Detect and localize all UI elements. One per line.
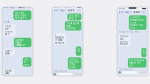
staticText: Read (4, 20, 11, 23)
button[interactable]: Send (24, 76, 32, 78)
staticText: See you (24, 58, 29, 66)
staticText: Yes (143, 49, 146, 56)
staticText: Edit (26, 6, 32, 9)
button[interactable]: Messages (118, 11, 132, 14)
staticText: Sam (133, 11, 139, 14)
button[interactable]: Edit (141, 11, 147, 14)
staticText: I missed it was at work (55, 34, 64, 44)
staticText: Yes! be there at 7 (5, 25, 13, 35)
button[interactable]: Send (139, 71, 147, 74)
staticText: I'll book a table for us (129, 59, 143, 67)
staticText: Did you see it (69, 14, 80, 20)
staticText: Can't wait (5, 50, 12, 55)
staticText: Read 9:42 AM (119, 30, 139, 33)
button[interactable]: Messages (53, 9, 67, 12)
staticText: Mom (18, 6, 24, 9)
staticText: 9:41 (119, 7, 125, 10)
staticText: Oof (77, 47, 80, 55)
button[interactable]: Add attachment (118, 71, 121, 74)
button[interactable]: Edit (26, 6, 32, 9)
button[interactable]: Messages (3, 6, 17, 9)
staticText: Delivered (119, 68, 133, 71)
staticText: Great I made lasagna (15, 39, 24, 46)
staticText: Drive safe (5, 69, 12, 75)
staticText: 9:41 (54, 5, 60, 8)
staticText: Edit (141, 11, 147, 14)
staticText: Send (74, 73, 82, 76)
button[interactable]: Send (74, 73, 82, 76)
staticText: Edit (76, 9, 82, 12)
staticText: Delivered (54, 70, 68, 72)
button[interactable]: Edit (76, 9, 82, 12)
staticText: Sounds good noon (120, 35, 129, 45)
staticText: Sending the clip now (69, 58, 79, 68)
staticText: Messages (120, 11, 132, 14)
staticText: Lunch tomorrow new place on 5th (130, 16, 143, 29)
staticText: Send (24, 76, 32, 78)
staticText: That goal was unreal (66, 22, 79, 30)
button[interactable]: Add attachment (53, 73, 56, 75)
staticText: Hey are you free tonight (15, 11, 27, 19)
button[interactable]: Add attachment (3, 76, 6, 78)
staticText: Messages (55, 9, 67, 12)
staticText: Send (139, 71, 147, 74)
staticText: Messages (5, 6, 17, 9)
staticText: Alex (68, 9, 75, 12)
